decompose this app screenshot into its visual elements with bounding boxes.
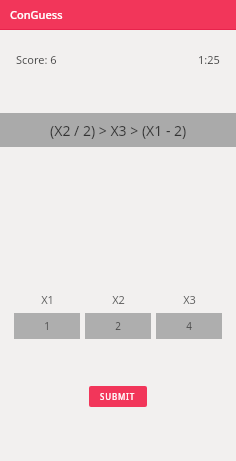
staticText: 1 [44, 319, 50, 333]
staticText: (X2 / 2) > X3 > (X1 - 2) [50, 121, 187, 140]
staticText: 1:25 [198, 52, 220, 67]
staticText: X2 [112, 292, 125, 307]
staticText: Score: 6 [16, 52, 57, 67]
staticText: 2 [115, 319, 121, 333]
button[interactable]: 2 [85, 313, 151, 339]
staticText: SUBMIT [100, 391, 136, 402]
button[interactable]: ConGuess [0, 0, 236, 29]
staticText: X1 [41, 292, 54, 307]
button[interactable]: 1 [14, 313, 80, 339]
staticText: ConGuess [10, 7, 63, 22]
button[interactable]: 4 [156, 313, 222, 339]
staticText: X3 [183, 292, 196, 307]
staticText: 4 [186, 319, 192, 333]
button[interactable]: SUBMIT [89, 386, 147, 407]
